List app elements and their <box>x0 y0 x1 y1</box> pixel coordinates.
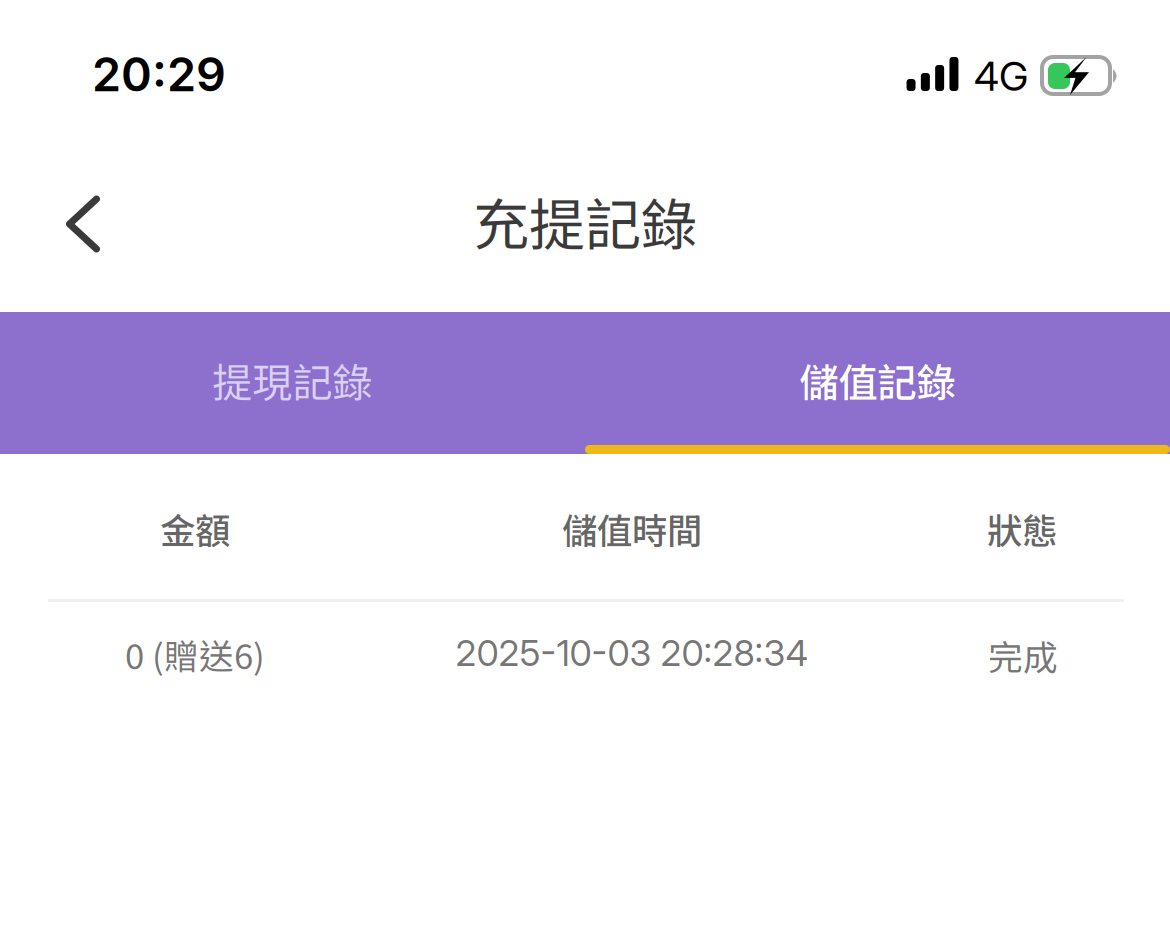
staticText: 完成 <box>988 630 1058 680</box>
staticText: 狀態 <box>987 503 1057 554</box>
staticText: 0 (贈送6) <box>125 629 265 679</box>
staticText: 4G <box>974 52 1028 100</box>
button[interactable]: 提現記錄 <box>0 312 585 454</box>
staticText: 金額 <box>160 503 230 554</box>
button[interactable]: 儲值記錄 <box>585 312 1170 454</box>
staticText: 提現記錄 <box>212 351 372 409</box>
staticText: 充提記錄 <box>473 180 697 262</box>
button[interactable]: Back <box>0 160 146 281</box>
staticText: 2025-10-03 20:28:34 <box>455 631 808 675</box>
staticText: 儲值時間 <box>562 503 702 554</box>
staticText: 儲值記錄 <box>799 351 955 408</box>
staticText: 20:29 <box>92 46 226 102</box>
